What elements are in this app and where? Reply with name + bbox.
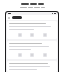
button[interactable]: Reply [7,21,57,39]
button[interactable]: More [43,33,47,37]
button[interactable]: More [43,53,47,57]
button[interactable]: Forward [30,53,34,57]
button[interactable] [12,16,22,19]
button[interactable]: Reply [7,41,57,59]
button[interactable]: Forward [30,33,34,37]
button[interactable]: Reply [18,33,22,37]
button[interactable]: Reply [18,53,22,57]
button[interactable]: Reply [7,61,57,72]
